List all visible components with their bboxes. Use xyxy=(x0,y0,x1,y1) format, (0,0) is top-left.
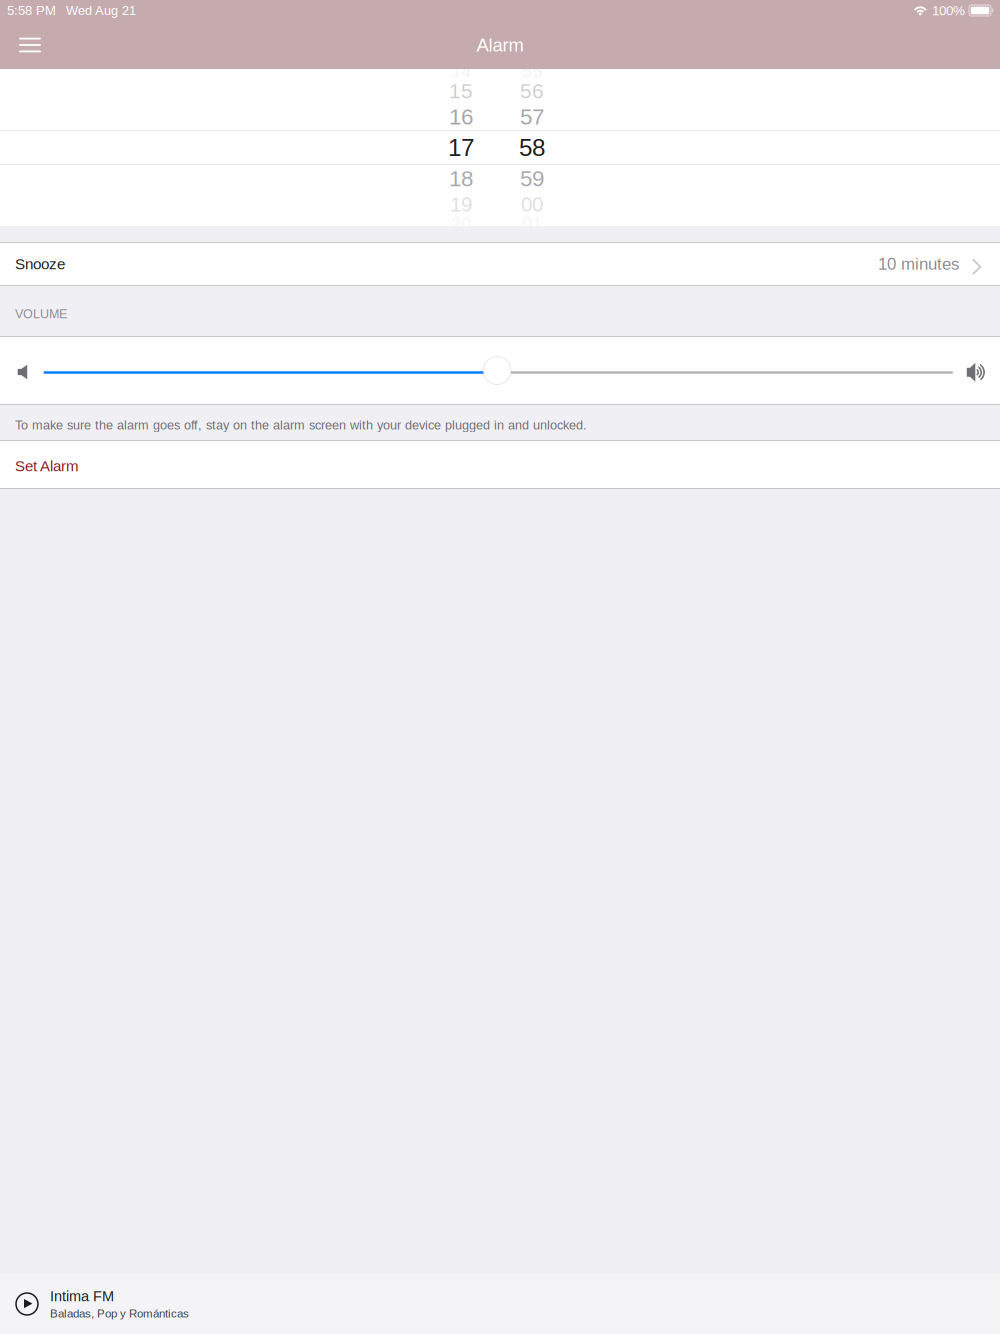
staticText: 5:58 PM xyxy=(7,3,56,18)
staticText: 20 xyxy=(451,213,471,234)
staticText: Alarm xyxy=(476,35,523,55)
staticText: Snooze xyxy=(15,255,65,272)
staticText: 58 xyxy=(519,134,545,161)
button[interactable]: Menu xyxy=(8,21,52,69)
staticText: 59 xyxy=(520,166,544,191)
staticText: 01 xyxy=(522,213,542,234)
staticText: Baladas, Pop y Románticas xyxy=(50,1307,189,1320)
staticText: 56 xyxy=(520,79,544,103)
staticText: Set Alarm xyxy=(15,458,79,474)
staticText: To make sure the alarm goes off, stay on… xyxy=(15,418,587,432)
staticText: 19 xyxy=(450,193,472,216)
staticText: 17 xyxy=(448,134,474,161)
staticText: Wed Aug 21 xyxy=(66,3,136,18)
staticText: 10 minutes xyxy=(878,255,959,273)
staticText: 55 xyxy=(522,61,542,81)
button[interactable]: Snooze xyxy=(0,243,1000,285)
staticText: 18 xyxy=(449,166,473,191)
staticText: 100% xyxy=(932,3,965,18)
staticText: 16 xyxy=(449,104,473,129)
button[interactable]: Set Alarm xyxy=(0,441,1000,488)
button[interactable]: Intima FM xyxy=(0,1274,1000,1334)
staticText: 14 xyxy=(451,61,471,81)
staticText: VOLUME xyxy=(15,307,67,321)
staticText: Intima FM xyxy=(50,1288,114,1304)
staticText: 15 xyxy=(449,79,473,103)
staticText: 00 xyxy=(521,193,543,216)
staticText: 57 xyxy=(520,104,544,129)
